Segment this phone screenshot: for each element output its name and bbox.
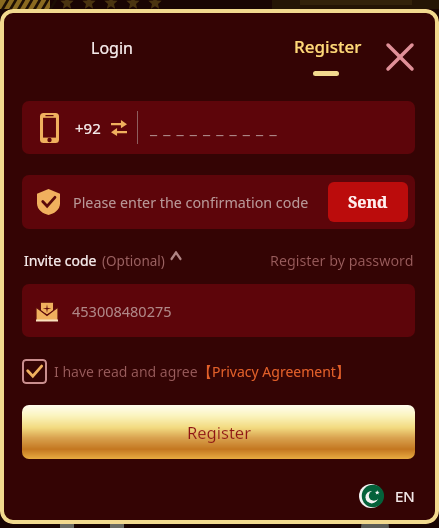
- staticText: Please enter the confirmation code: [73, 193, 309, 212]
- staticText: +92: [75, 118, 101, 138]
- staticText: Register: [294, 35, 362, 58]
- staticText: Invite code: [24, 251, 97, 270]
- button[interactable]: Login: [22, 28, 202, 68]
- staticText: Login: [91, 37, 133, 59]
- button[interactable]: 453008480275: [22, 284, 415, 337]
- staticText: I have read and agree: [54, 362, 198, 381]
- staticText: _ _ _ _ _ _ _ _ _ _: [150, 117, 278, 139]
- button[interactable]: +92: [22, 101, 415, 154]
- button[interactable]: Send: [328, 182, 408, 222]
- staticText: EN: [395, 486, 415, 506]
- staticText: 453008480275: [72, 301, 172, 321]
- button[interactable]: EN: [359, 483, 415, 509]
- staticText: (Optional): [102, 252, 165, 270]
- staticText: Register: [187, 421, 251, 443]
- staticText: Register by password: [270, 251, 414, 270]
- button[interactable]: Register: [22, 405, 415, 459]
- button[interactable]: Register: [268, 35, 388, 87]
- button[interactable]: I have read and agree: [22, 359, 350, 384]
- staticText: 【Privacy Agreement】: [198, 362, 350, 381]
- button[interactable]: Register by password: [270, 251, 414, 270]
- button[interactable]: Close: [376, 33, 424, 81]
- staticText: Send: [348, 191, 388, 213]
- button[interactable]: Invite code: [24, 251, 181, 270]
